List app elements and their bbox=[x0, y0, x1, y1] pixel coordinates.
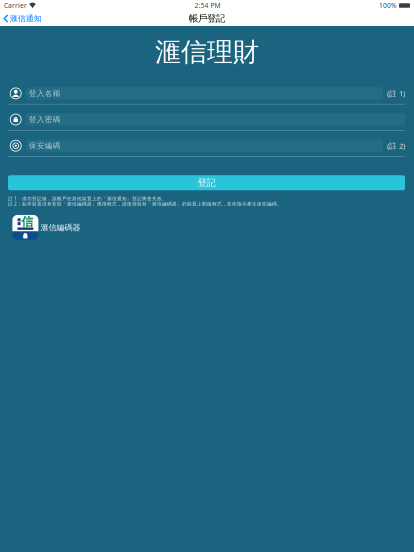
staticText: 登記 bbox=[197, 177, 215, 188]
staticText: 登入密碼 bbox=[29, 115, 61, 124]
staticText: 滙信理財 bbox=[155, 36, 259, 69]
staticText: 滙信編碼器 bbox=[41, 222, 81, 232]
staticText: 帳戶登記 bbox=[189, 13, 225, 24]
staticText: (註 1) bbox=[387, 88, 405, 99]
staticText: 保安編碼 bbox=[29, 141, 61, 150]
staticText: 信 bbox=[21, 214, 33, 229]
button[interactable]: 信 bbox=[0, 207, 414, 240]
staticText: (註 2) bbox=[387, 140, 405, 151]
staticText: 登入名稱 bbox=[29, 89, 61, 98]
button[interactable]: 登記 bbox=[8, 175, 405, 190]
staticText: Carrier bbox=[4, 1, 27, 10]
staticText: 註 2：如本裝置沒有安裝「滙信編碼器」應用程式，請使用裝有「滙信編碼器」的裝置上… bbox=[8, 201, 282, 207]
staticText: 滙信通知 bbox=[10, 14, 42, 23]
button[interactable]: 滙信通知 bbox=[0, 11, 42, 26]
staticText: 100% bbox=[379, 1, 397, 10]
staticText: 2:54 PM bbox=[194, 1, 220, 10]
staticText: 註 1：成功登記後，該帳戶在其他裝置上的「滙信通知」登記將會失效。 bbox=[8, 195, 167, 202]
